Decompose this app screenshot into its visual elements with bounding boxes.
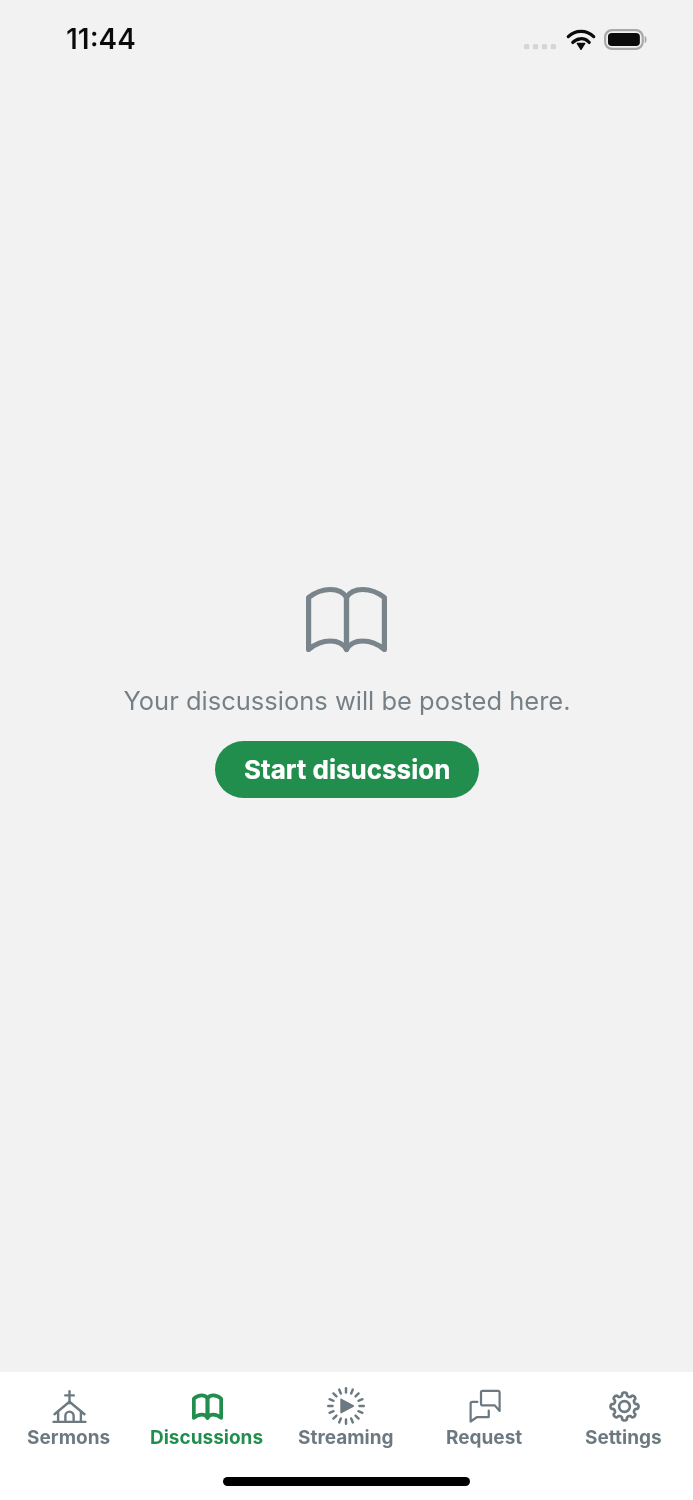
- staticText: Start disucssion: [244, 754, 451, 785]
- button[interactable]: Request: [415, 1372, 554, 1462]
- button[interactable]: Sermons: [0, 1372, 138, 1462]
- staticText: Streaming: [298, 1426, 394, 1449]
- button[interactable]: Start disucssion: [215, 741, 479, 798]
- staticText: Request: [446, 1426, 523, 1449]
- button[interactable]: Streaming: [276, 1372, 415, 1462]
- staticText: Your discussions will be posted here.: [123, 685, 571, 716]
- button[interactable]: Settings: [554, 1372, 693, 1462]
- staticText: Settings: [585, 1426, 662, 1449]
- button[interactable]: Discussions: [138, 1372, 276, 1462]
- staticText: Sermons: [27, 1426, 111, 1449]
- staticText: Discussions: [150, 1426, 264, 1449]
- staticText: 11:44: [66, 22, 136, 56]
